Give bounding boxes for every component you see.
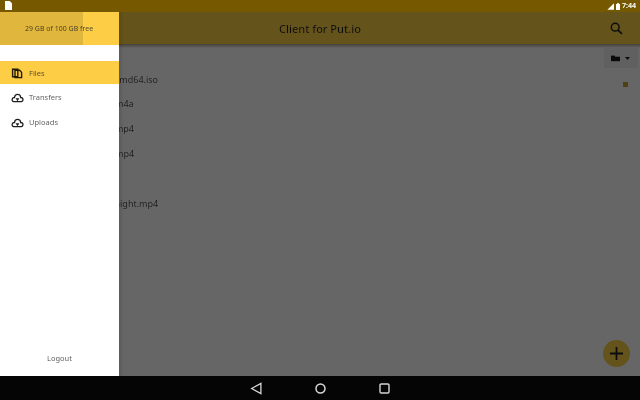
button[interactable]: Home bbox=[312, 380, 328, 396]
staticText: Uploads bbox=[29, 117, 58, 127]
button[interactable]: Batman 2008 The Dark Knight.mp4 bbox=[0, 190, 640, 215]
button[interactable]: Search bbox=[607, 19, 625, 37]
button[interactable]: Tears of Steel 2012 720p.mp4 bbox=[0, 140, 640, 165]
button[interactable]: Uploads bbox=[0, 109, 119, 134]
staticText: Sintel trailer 2010 1080p.mp4 bbox=[10, 122, 134, 134]
staticText: ubuntu-18.04.3-desktop-amd64.iso bbox=[10, 73, 159, 85]
staticText: Files bbox=[29, 68, 45, 78]
button[interactable]: ubuntu-18.04.3-desktop-amd64.iso bbox=[0, 67, 640, 90]
button[interactable]: Files bbox=[0, 61, 119, 84]
button[interactable]: Transfers bbox=[0, 84, 119, 109]
button[interactable]: Recents bbox=[376, 380, 392, 396]
staticText: Tears of Steel 2012 720p.mp4 bbox=[10, 147, 135, 159]
staticText: Transfers bbox=[29, 92, 62, 102]
staticText: Batman 2008 The Dark Knight.mp4 bbox=[10, 197, 159, 209]
staticText: Logout bbox=[47, 353, 72, 363]
button[interactable]: Add bbox=[603, 340, 630, 367]
staticText: 7:44 bbox=[622, 1, 636, 11]
button[interactable]: Back bbox=[248, 380, 264, 396]
staticText: 29 GB of 100 GB free bbox=[25, 24, 94, 34]
button[interactable]: Pink Floyd - Comfortably.m4a bbox=[0, 90, 640, 115]
button[interactable]: Logout bbox=[0, 342, 119, 374]
button[interactable]: Filter bbox=[604, 48, 638, 68]
button[interactable]: promo.avi bbox=[0, 165, 640, 190]
button[interactable]: Sintel trailer 2010 1080p.mp4 bbox=[0, 115, 640, 140]
staticText: Client for Put.io bbox=[279, 21, 361, 36]
staticText: Pink Floyd - Comfortably.m4a bbox=[10, 97, 134, 109]
